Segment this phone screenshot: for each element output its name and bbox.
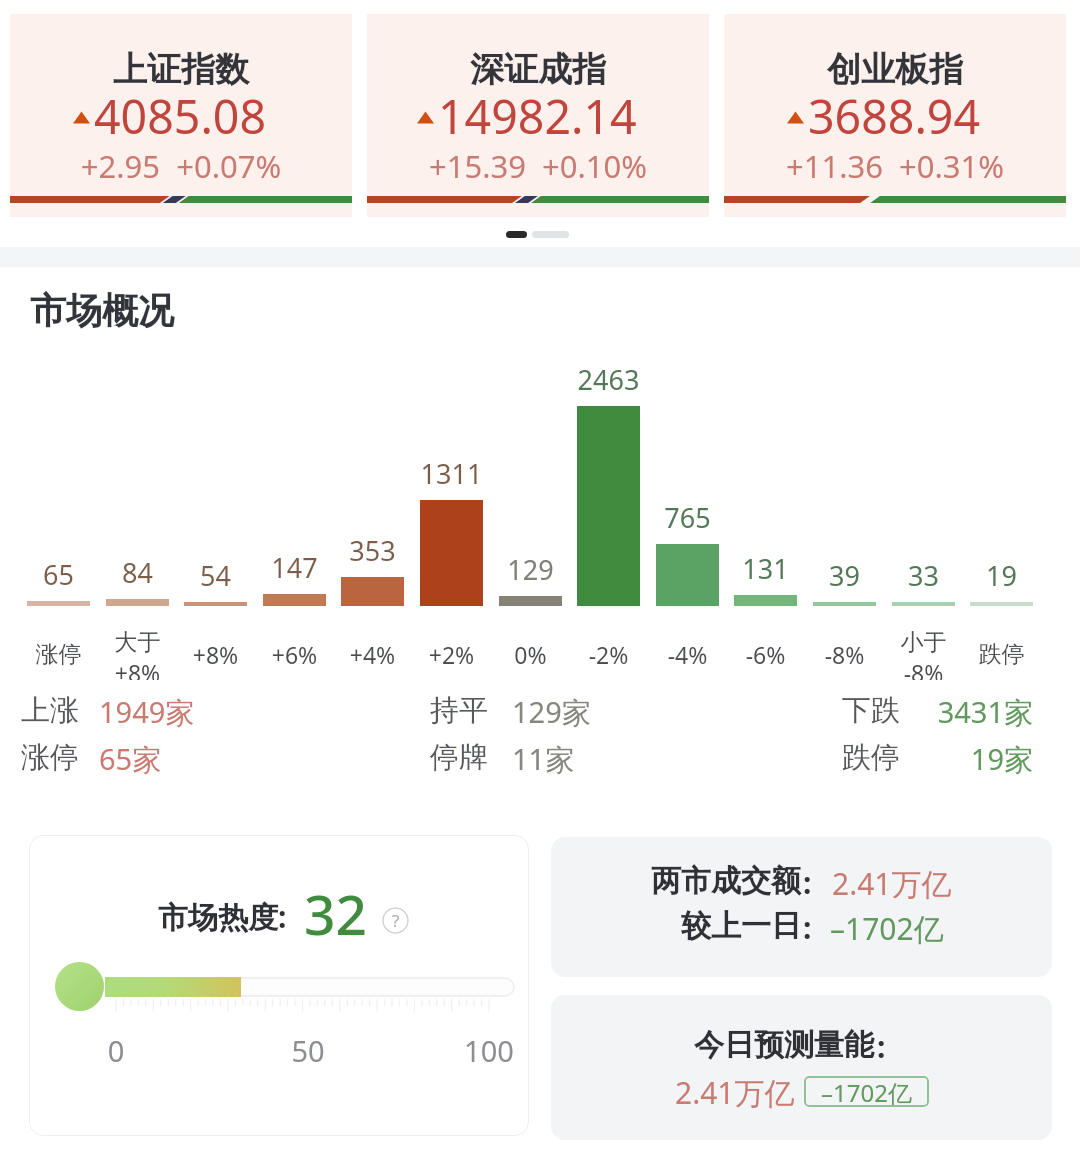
staticText: 深证成指 — [367, 48, 709, 91]
staticText: 129家 — [512, 692, 672, 732]
staticText: 19 — [960, 557, 1043, 594]
staticText: 84 — [96, 554, 179, 591]
button[interactable]: Page 2 — [532, 231, 569, 238]
staticText: 下跌 — [842, 692, 900, 729]
staticText: 19家 — [872, 739, 1033, 779]
staticText: 持平 — [430, 692, 488, 729]
staticText: 54 — [174, 557, 257, 594]
staticText: –1702亿 — [821, 1076, 912, 1107]
staticText: 两市成交额 — [551, 862, 801, 900]
staticText: 2463 — [567, 361, 650, 398]
staticText: 353 — [331, 532, 414, 569]
staticText: 2.41万亿 — [675, 1072, 795, 1113]
staticText: 今日预测量能 — [551, 1026, 874, 1064]
staticText: 765 — [646, 499, 729, 536]
staticText: 65 — [17, 556, 100, 593]
staticText: +11.36 +0.31% — [724, 145, 1066, 187]
staticText: –1702亿 — [830, 908, 944, 949]
staticText: 大于 — [94, 628, 181, 657]
button[interactable]: 今日预测量能 — [551, 995, 1052, 1140]
staticText: 50 — [268, 1031, 348, 1070]
staticText: +2% — [408, 639, 495, 670]
button[interactable]: What is market heat — [382, 907, 409, 934]
staticText: 小于 — [880, 628, 967, 657]
staticText: 11家 — [512, 739, 672, 779]
staticText: 市场概况 — [30, 288, 174, 333]
staticText: +15.39 +0.10% — [367, 145, 709, 187]
staticText: -8% — [801, 639, 888, 670]
staticText: -4% — [644, 639, 731, 670]
staticText: 较上一日 — [551, 907, 801, 945]
staticText: : — [803, 907, 812, 948]
staticText: 33 — [882, 557, 965, 594]
staticText: 停牌 — [430, 739, 488, 776]
staticText: 创业板指 — [724, 48, 1066, 91]
staticText: 上涨 — [21, 692, 79, 729]
button[interactable]: 深证成指 — [367, 14, 709, 217]
staticText: 市场热度: — [158, 896, 287, 937]
staticText: 1311 — [410, 455, 493, 492]
staticText: 0% — [487, 639, 574, 670]
staticText: 39 — [803, 557, 886, 594]
staticText: +8% — [94, 657, 181, 680]
staticText: 3431家 — [872, 692, 1033, 732]
staticText: -8% — [880, 657, 967, 680]
staticText: 14982.14 — [438, 84, 637, 147]
staticText: +6% — [251, 639, 338, 670]
button[interactable]: 市场热度: — [29, 835, 529, 1136]
staticText: : — [803, 862, 812, 903]
button[interactable]: 两市成交额 — [551, 837, 1052, 977]
staticText: +8% — [172, 639, 259, 670]
staticText: -6% — [722, 639, 809, 670]
staticText: 3688.94 — [808, 84, 981, 147]
staticText: 65家 — [99, 739, 259, 779]
button[interactable]: 创业板指 — [724, 14, 1066, 217]
staticText: 4085.08 — [94, 84, 267, 147]
staticText: 129 — [489, 551, 572, 588]
staticText: 跌停 — [842, 739, 900, 776]
staticText: 147 — [253, 549, 336, 586]
staticText: : — [877, 1026, 886, 1067]
staticText: -2% — [565, 639, 652, 670]
staticText: 0 — [76, 1031, 156, 1070]
button[interactable]: Page 1 — [506, 231, 527, 238]
staticText: ? — [392, 909, 400, 932]
staticText: +4% — [329, 639, 416, 670]
staticText: 跌停 — [958, 640, 1045, 669]
staticText: 32 — [304, 876, 367, 951]
staticText: 上证指数 — [10, 48, 352, 91]
staticText: 2.41万亿 — [832, 863, 952, 904]
button[interactable]: 上证指数 — [10, 14, 352, 217]
staticText: 131 — [724, 550, 807, 587]
staticText: 100 — [449, 1031, 529, 1070]
staticText: 涨停 — [21, 739, 79, 776]
staticText: +2.95 +0.07% — [10, 145, 352, 187]
staticText: 1949家 — [99, 692, 259, 732]
staticText: 涨停 — [15, 640, 102, 669]
